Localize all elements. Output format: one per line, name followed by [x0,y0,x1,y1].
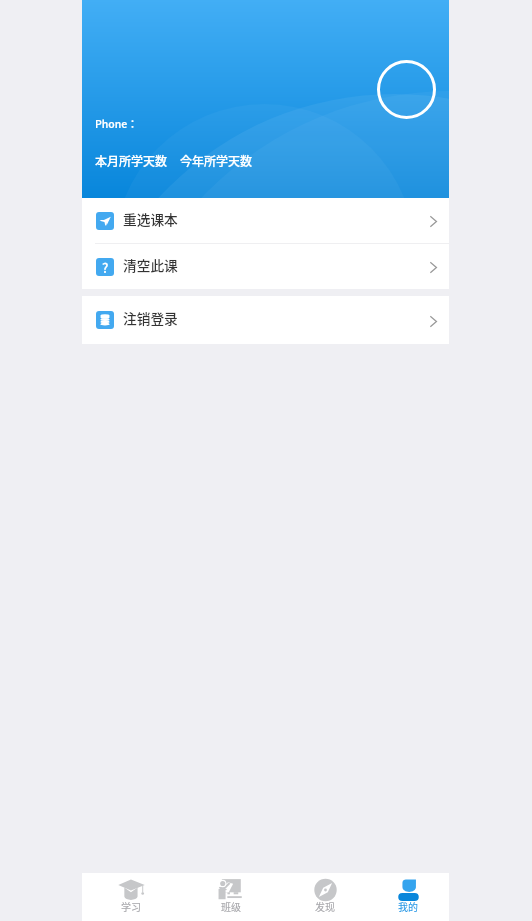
staticText: Phone： [95,116,138,131]
button[interactable]: 注销登录 [82,296,449,344]
button[interactable]: 班级 [185,873,277,921]
staticText: 清空此课 [123,255,178,275]
button[interactable]: Profile avatar [377,60,436,119]
staticText: 班级 [221,899,241,913]
staticText: 重选课本 [123,209,178,229]
staticText: 发现 [315,899,335,913]
button[interactable]: ? [82,244,449,289]
staticText: 注销登录 [123,308,178,328]
button[interactable]: 学习 [85,873,177,921]
staticText: 今年所学天数 [180,152,253,169]
staticText: 我的 [398,899,418,913]
staticText: ? [102,258,109,276]
staticText: 学习 [121,899,141,913]
button[interactable]: 我的 [362,873,454,921]
staticText: 本月所学天数 [95,152,168,169]
button[interactable]: 发现 [279,873,371,921]
button[interactable]: 重选课本 [82,198,449,243]
